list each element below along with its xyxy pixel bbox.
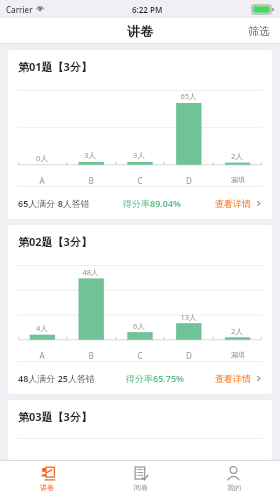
- staticText: 我的: [227, 483, 241, 492]
- button[interactable]: 讲卷: [0, 461, 94, 497]
- staticText: C: [137, 175, 143, 186]
- button[interactable]: 第03题【3分】: [8, 400, 272, 460]
- staticText: B: [88, 350, 94, 361]
- staticText: 65人: [180, 91, 197, 101]
- staticText: B: [88, 175, 94, 186]
- staticText: D: [186, 350, 192, 361]
- staticText: 得分率65.75%: [126, 372, 184, 384]
- staticText: 3人: [84, 150, 96, 160]
- staticText: C: [137, 350, 143, 361]
- staticText: 2人: [231, 326, 243, 336]
- staticText: 讲卷: [127, 23, 153, 39]
- button[interactable]: 查看详情: [215, 369, 262, 388]
- staticText: 6:22 PM: [132, 4, 163, 15]
- button[interactable]: 第02题【3分】: [8, 225, 272, 394]
- button[interactable]: 我的: [187, 461, 280, 497]
- button[interactable]: 查看详情: [215, 194, 262, 213]
- staticText: 第02题【3分】: [18, 234, 92, 249]
- staticText: 2人: [231, 151, 243, 161]
- staticText: 3人: [133, 150, 145, 160]
- staticText: 4人: [36, 323, 48, 333]
- staticText: 48人满分 25人答错: [18, 372, 95, 384]
- staticText: 第03题【3分】: [18, 409, 92, 424]
- staticText: 阅卷: [134, 483, 148, 492]
- staticText: 查看详情: [215, 373, 251, 384]
- button[interactable]: 阅卷: [94, 461, 187, 497]
- staticText: Carrier: [6, 4, 33, 15]
- staticText: 0人: [36, 153, 48, 163]
- staticText: 48人: [82, 267, 99, 277]
- staticText: 讲卷: [40, 483, 54, 492]
- staticText: 第01题【3分】: [18, 59, 92, 74]
- staticText: 查看详情: [215, 198, 251, 209]
- button[interactable]: 筛选: [238, 20, 280, 42]
- staticText: 得分率89.04%: [123, 197, 181, 209]
- staticText: 65人满分 8人答错: [18, 197, 90, 209]
- button[interactable]: 第01题【3分】: [8, 50, 272, 219]
- staticText: 6人: [133, 321, 145, 331]
- staticText: D: [186, 175, 192, 186]
- staticText: 漏填: [231, 350, 245, 359]
- staticText: 13人: [180, 312, 197, 322]
- staticText: A: [39, 350, 45, 361]
- staticText: 筛选: [248, 24, 270, 38]
- staticText: A: [39, 175, 45, 186]
- staticText: 漏填: [231, 175, 245, 184]
